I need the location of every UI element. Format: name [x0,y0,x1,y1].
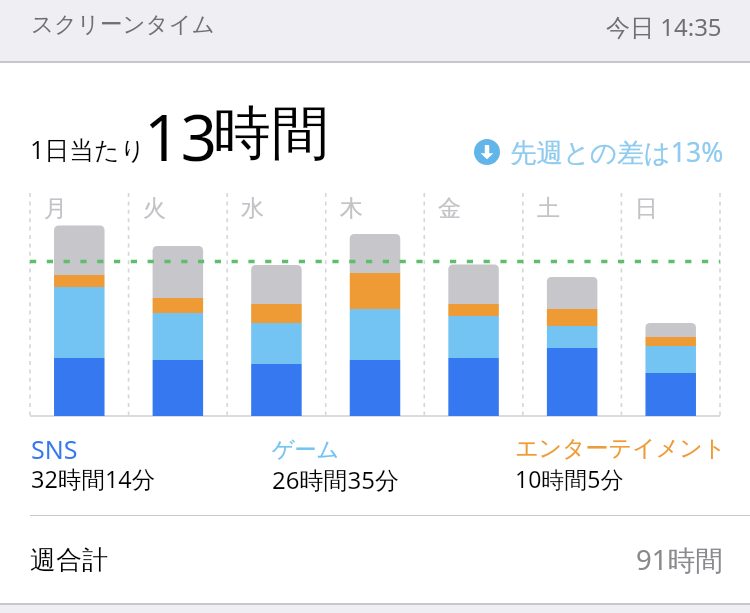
staticText: 91時間 [636,541,723,579]
staticText: 水 [241,194,264,223]
staticText: 10時間5分 [515,463,624,494]
staticText: 土 [537,194,560,223]
staticText: 日 [635,194,658,223]
staticText: スクリーンタイム [31,10,215,38]
button[interactable]: 週合計 [0,516,750,604]
button[interactable]: ゲーム [272,432,497,492]
staticText: 先週との差は13% [510,134,724,170]
staticText: 26時間35分 [272,463,399,496]
button[interactable]: SNS [31,432,256,492]
staticText: エンターテイメント [515,434,721,463]
button[interactable]: 木 [326,193,425,416]
button[interactable]: 金 [424,193,523,416]
button[interactable]: 月 [30,193,129,416]
staticText: 金 [438,194,461,223]
staticText: ゲーム [272,436,340,464]
button[interactable]: 土 [523,193,622,416]
other: 先週との差は13% [474,139,500,165]
staticText: 火 [143,194,166,223]
button[interactable]: 火 [129,193,228,416]
button[interactable]: 水 [227,193,326,416]
button[interactable]: 日 [621,193,720,416]
staticText: 13 [144,93,218,180]
staticText: 32時間14分 [31,463,156,495]
staticText: 週合計 [30,544,108,577]
staticText: 時間 [213,97,329,170]
staticText: SNS [31,432,78,466]
button[interactable]: 先週との差は13% [474,134,724,170]
staticText: 木 [340,194,363,223]
button[interactable]: エンターテイメント [515,432,721,492]
staticText: 月 [44,194,67,223]
staticText: 今日 14:35 [606,10,722,43]
staticText: 1日当たり [30,132,146,166]
